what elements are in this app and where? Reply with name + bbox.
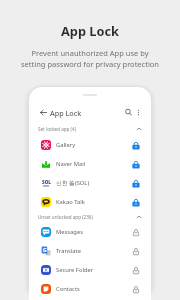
button[interactable]: Messages — [31, 222, 149, 241]
staticText: Kakao Talk — [56, 198, 85, 206]
staticText: App Lock — [50, 108, 82, 118]
staticText: SOL — [42, 179, 51, 185]
staticText: Unset unlocked app (236) — [38, 214, 93, 220]
staticText: 신한 쏠(SOL) — [56, 179, 90, 187]
staticText: App Lock — [61, 22, 120, 39]
staticText: G — [43, 247, 47, 254]
button[interactable]: Secure Folder — [31, 260, 149, 279]
button[interactable]: Kakao Talk — [31, 192, 149, 211]
button[interactable]: Contacts — [31, 279, 149, 298]
button[interactable]: Search — [124, 108, 133, 117]
staticText: Contacts — [56, 285, 80, 293]
staticText: Prevent unauthorized App use by setting … — [21, 48, 159, 69]
button[interactable]: SOL — [31, 173, 149, 192]
staticText: Secure Folder — [56, 266, 94, 274]
button[interactable]: Naver Mail — [31, 154, 149, 173]
staticText: Naver Mail — [56, 160, 86, 168]
button[interactable]: G — [31, 241, 149, 260]
staticText: Gallery — [56, 141, 76, 149]
staticText: Messages — [56, 228, 83, 236]
staticText: Set locked app (4) — [38, 126, 77, 132]
button[interactable]: More options — [134, 108, 143, 117]
button[interactable]: Gallery — [31, 135, 149, 154]
staticText: Translate — [56, 247, 81, 255]
button[interactable]: Back — [39, 108, 48, 117]
